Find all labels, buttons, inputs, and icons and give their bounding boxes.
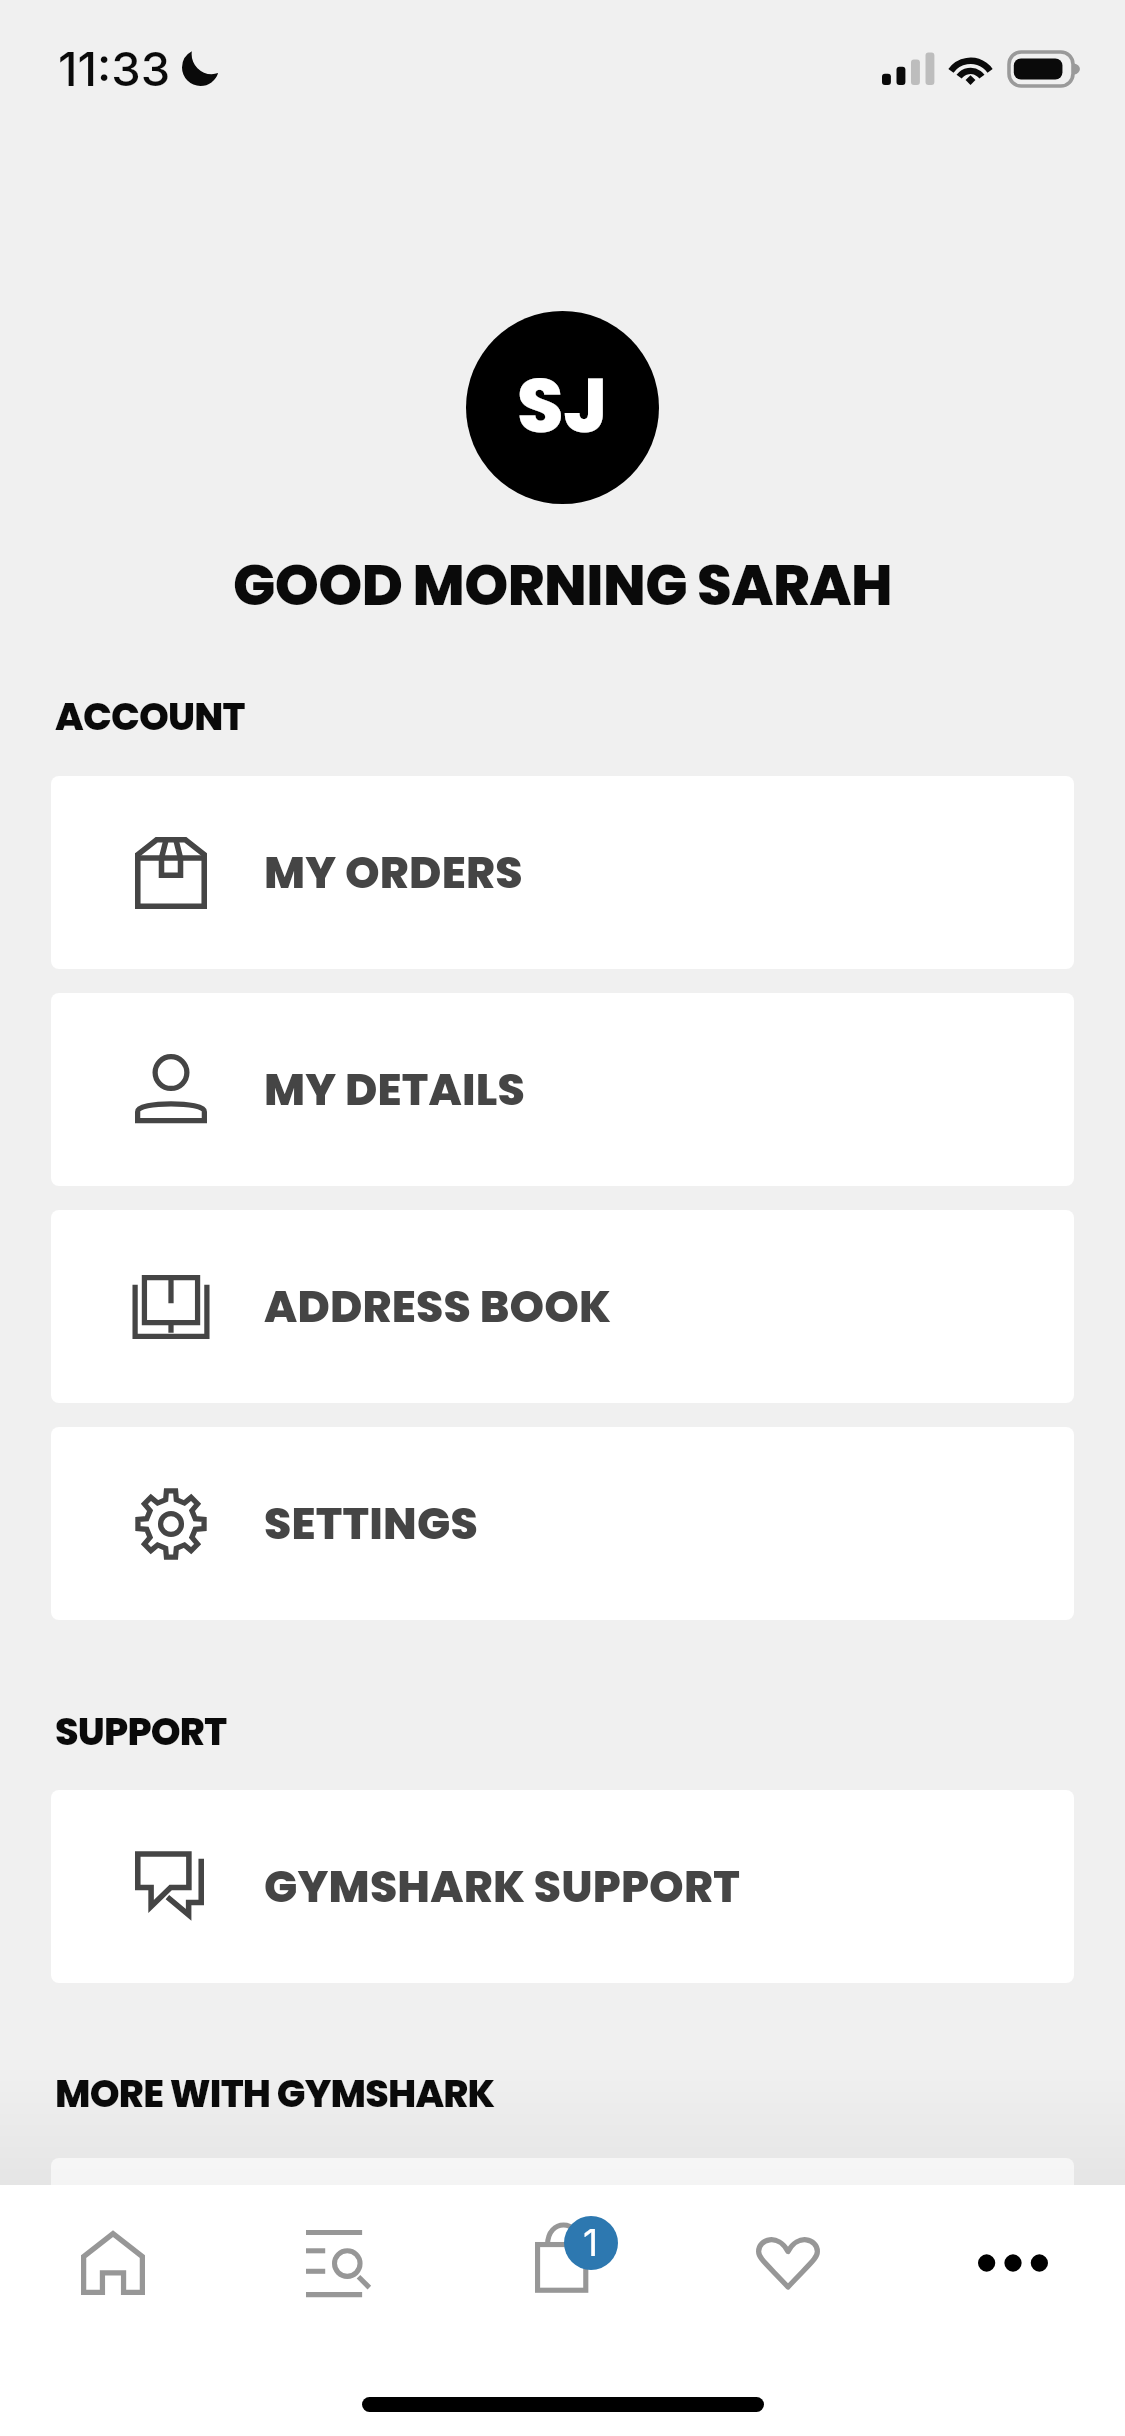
button[interactable]: ADDRESS BOOK [51,1210,1074,1403]
staticText: 1 [583,2220,599,2265]
staticText: MY ORDERS [264,842,523,904]
staticText: MY DETAILS [264,1059,526,1121]
staticText: SETTINGS [264,1493,478,1555]
button[interactable]: Wishlist [675,2185,900,2340]
button[interactable]: Profile [466,311,659,504]
button[interactable]: More [900,2185,1125,2340]
staticText: SUPPORT [55,1705,227,1758]
staticText: ACCOUNT [55,690,245,743]
staticText: GYMSHARK SUPPORT [264,1856,740,1918]
button[interactable]: SETTINGS [51,1427,1074,1620]
button[interactable]: Bag [450,2185,675,2340]
button[interactable]: Home [0,2185,225,2340]
staticText: 11:33 [58,40,171,97]
staticText: SJ [517,353,608,458]
staticText: MORE WITH GYMSHARK [55,2067,495,2120]
button[interactable]: GYMSHARK SUPPORT [51,1790,1074,1983]
button[interactable]: MY ORDERS [51,776,1074,969]
button[interactable]: MY DETAILS [51,993,1074,1186]
staticText: GOOD MORNING SARAH [233,546,892,624]
button[interactable]: Search [225,2185,450,2340]
button[interactable]: More with Gymshark [51,2158,1074,2351]
staticText: ADDRESS BOOK [264,1276,612,1338]
